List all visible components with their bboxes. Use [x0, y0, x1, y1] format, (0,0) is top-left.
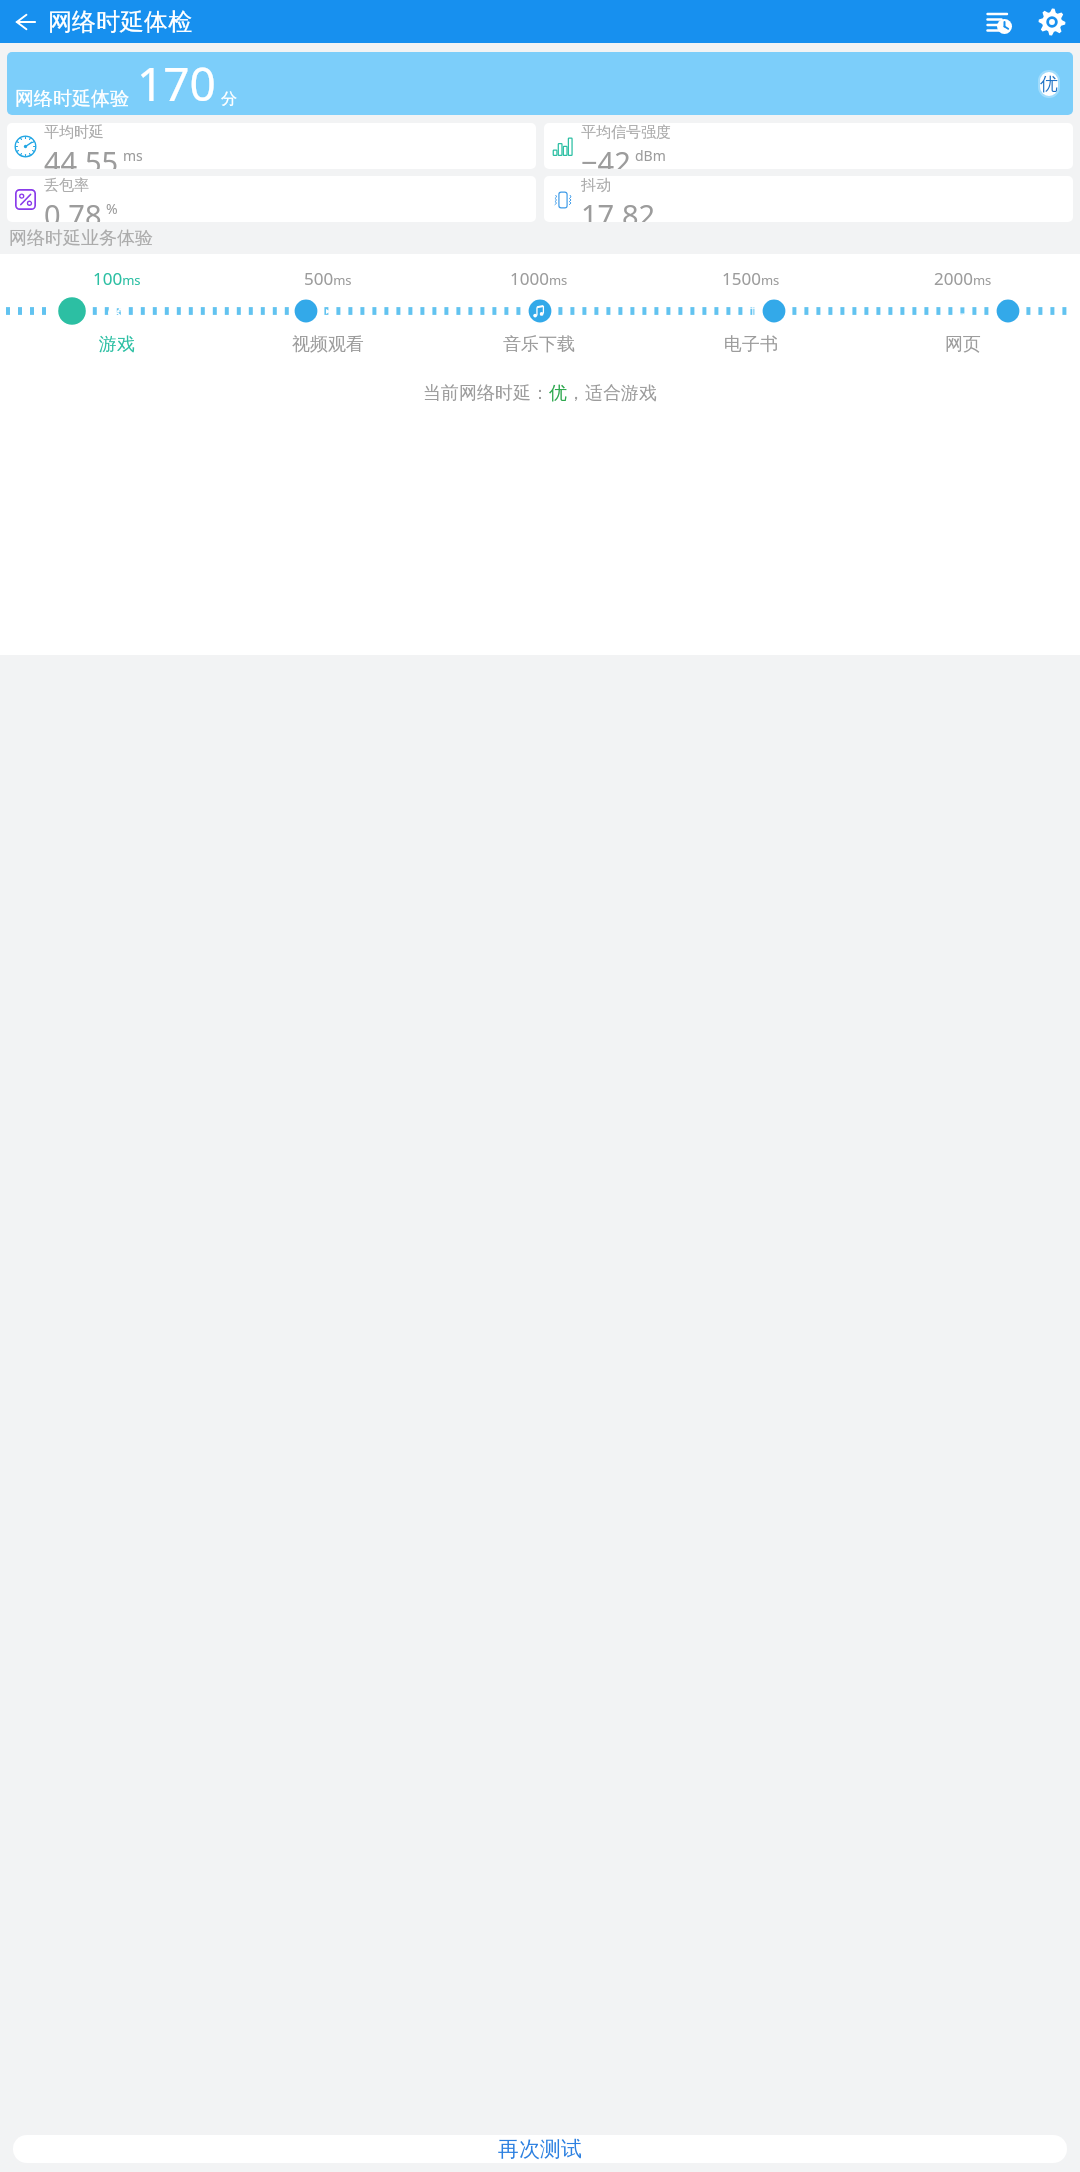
staticText: 500ms [304, 267, 352, 290]
staticText: 网络时延体验 [15, 87, 129, 111]
staticText: 平均信号强度 [581, 123, 671, 142]
staticText: 当前网络时延：优，适合游戏 [423, 382, 657, 405]
button[interactable]: 视频观看 [222, 333, 433, 356]
staticText: 优 [1040, 73, 1058, 96]
button[interactable]: 平均时延 [7, 123, 536, 169]
button[interactable]: 网络时延体验 [7, 52, 1073, 115]
button[interactable]: 平均信号强度 [544, 123, 1073, 169]
staticText: 网络时延业务体验 [9, 227, 153, 250]
staticText: −42 [581, 142, 631, 169]
staticText: 44.55 [44, 142, 119, 169]
button[interactable]: 游戏 [11, 333, 222, 356]
button[interactable]: Settings [1032, 2, 1072, 42]
button[interactable]: 音乐下载 [433, 333, 645, 356]
staticText: 1500ms [722, 267, 780, 290]
staticText: 100ms [93, 267, 141, 290]
staticText: 电子书 [724, 333, 778, 356]
staticText: 视频观看 [292, 333, 364, 356]
staticText: 音乐下载 [503, 333, 575, 356]
staticText: 2000ms [934, 267, 992, 290]
staticText: 再次测试 [498, 2136, 582, 2162]
staticText: 平均时延 [44, 123, 104, 142]
button[interactable]: 丢包率 [7, 176, 536, 222]
button[interactable]: 再次测试 [13, 2135, 1067, 2163]
staticText: 网页 [945, 333, 981, 356]
staticText: dBm [635, 146, 666, 165]
button[interactable]: 电子书 [645, 333, 857, 356]
staticText: 1000ms [510, 267, 568, 290]
staticText: 丢包率 [44, 176, 89, 195]
button[interactable]: 网页 [857, 333, 1069, 356]
staticText: ms [123, 146, 143, 165]
button[interactable]: Back [5, 2, 45, 42]
staticText: 抖动 [581, 176, 611, 195]
staticText: 170 [137, 52, 216, 115]
staticText: 17.82 [581, 195, 656, 222]
staticText: % [106, 199, 118, 218]
button[interactable]: History [979, 2, 1019, 42]
staticText: 0.78 [44, 195, 102, 222]
staticText: 网络时延体检 [48, 7, 192, 37]
button[interactable]: 抖动 [544, 176, 1073, 222]
staticText: 游戏 [99, 333, 135, 356]
staticText: 分 [221, 89, 237, 109]
